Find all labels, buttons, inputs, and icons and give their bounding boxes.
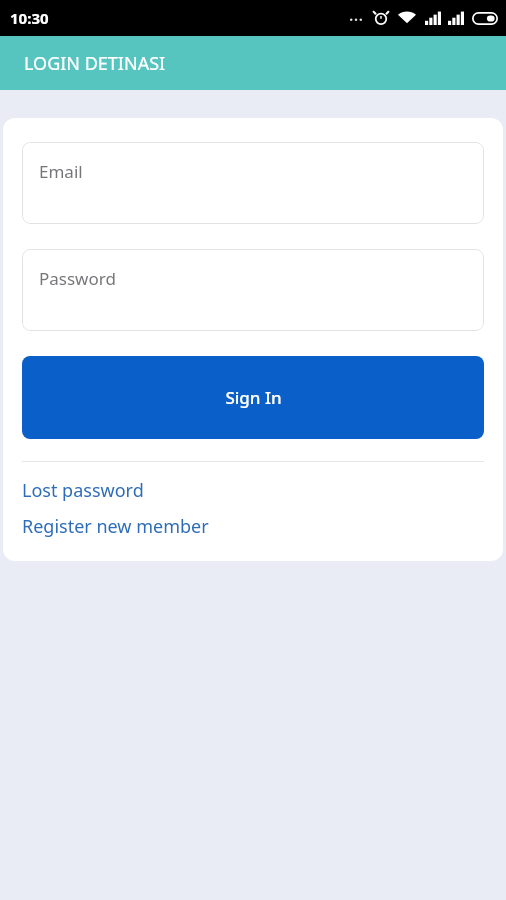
- staticText: 10:30: [10, 8, 49, 28]
- staticText: Lost password: [22, 478, 144, 503]
- button[interactable]: Email: [22, 142, 484, 224]
- button[interactable]: Password: [22, 249, 484, 331]
- staticText: LOGIN DETINASI: [24, 51, 166, 76]
- staticText: Register new member: [22, 514, 209, 539]
- button[interactable]: Sign In: [22, 356, 484, 439]
- staticText: Password: [39, 267, 116, 290]
- staticText: Sign In: [225, 386, 282, 409]
- button[interactable]: Lost password: [22, 478, 484, 503]
- staticText: Email: [39, 160, 83, 183]
- button[interactable]: Register new member: [22, 514, 484, 539]
